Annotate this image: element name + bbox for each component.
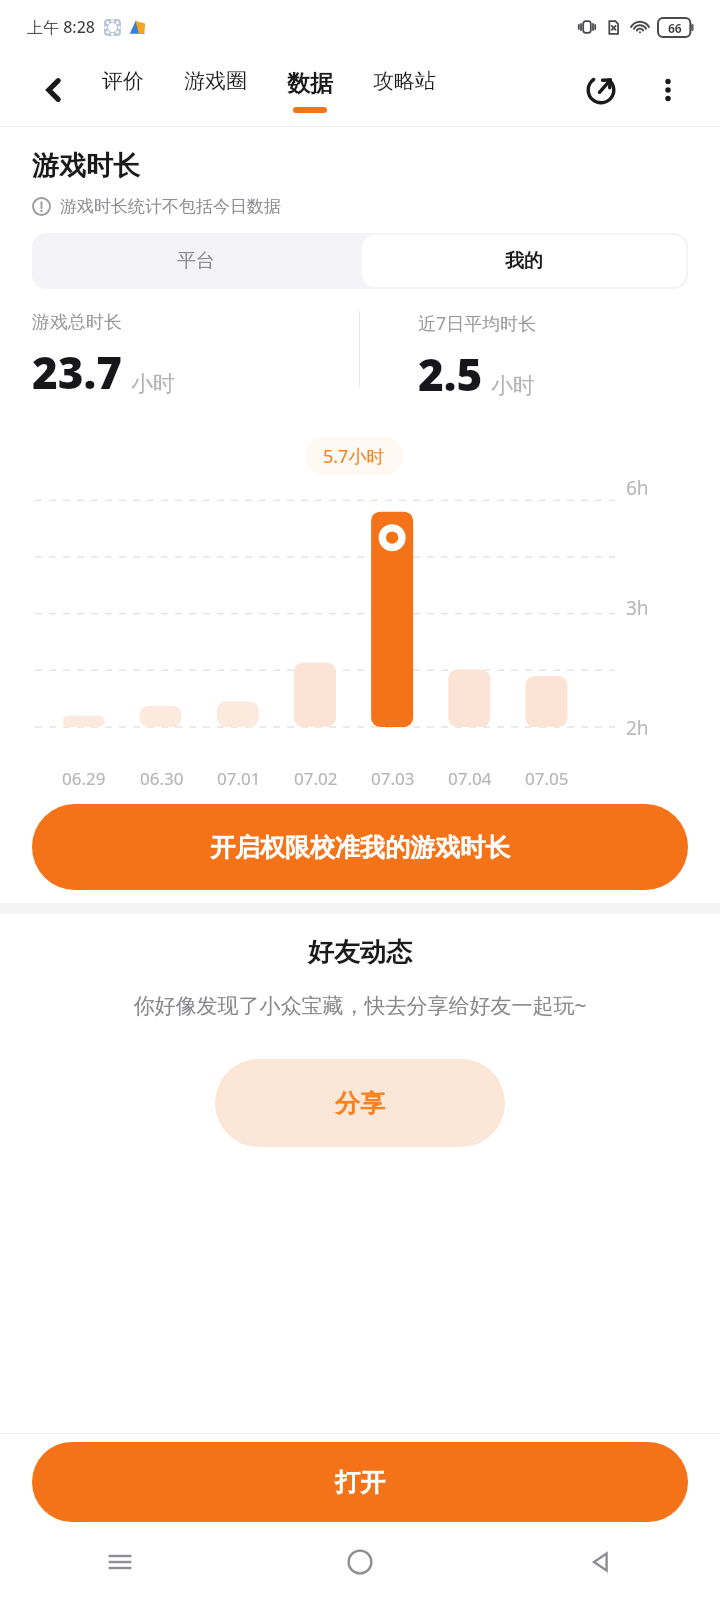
button[interactable]: 数据 xyxy=(285,69,335,113)
button[interactable]: 打开 xyxy=(32,1442,688,1522)
staticText: 游戏总时长 xyxy=(32,311,122,334)
button[interactable]: Back xyxy=(480,1534,720,1590)
button[interactable]: 我的 xyxy=(362,235,686,287)
button[interactable]: 游戏圈 xyxy=(182,68,249,113)
staticText: 07.01 xyxy=(217,767,261,790)
staticText: 5.7小时 xyxy=(323,444,385,469)
staticText: 我的 xyxy=(505,249,543,273)
staticText: 数据 xyxy=(287,69,333,98)
staticText: 打开 xyxy=(335,1467,385,1498)
staticText: 游戏时长统计不包括今日数据 xyxy=(60,196,281,217)
staticText: 小时 xyxy=(491,372,535,400)
staticText: 07.04 xyxy=(448,767,492,790)
button[interactable]: 开启权限校准我的游戏时长 xyxy=(32,804,688,890)
button[interactable]: Back xyxy=(34,70,74,110)
staticText: 好友动态 xyxy=(308,936,412,969)
staticText: 23.7 xyxy=(32,342,123,402)
button[interactable]: Share xyxy=(578,67,624,113)
staticText: 3h xyxy=(626,595,649,621)
staticText: 06.30 xyxy=(140,767,184,790)
staticText: 66 xyxy=(668,20,682,36)
staticText: 07.03 xyxy=(371,767,415,790)
staticText: 游戏圈 xyxy=(184,68,247,94)
button[interactable]: More options xyxy=(646,68,690,112)
staticText: 小时 xyxy=(131,370,175,398)
staticText: 分享 xyxy=(335,1088,385,1119)
staticText: 评价 xyxy=(102,68,144,94)
staticText: 06.29 xyxy=(62,767,106,790)
staticText: 开启权限校准我的游戏时长 xyxy=(210,832,510,863)
button[interactable]: 平台 xyxy=(32,233,360,289)
staticText: 6h xyxy=(626,475,649,501)
staticText: 你好像发现了小众宝藏，快去分享给好友一起玩~ xyxy=(133,991,587,1020)
button[interactable]: 攻略站 xyxy=(371,68,438,113)
staticText: 攻略站 xyxy=(373,68,436,94)
staticText: 2.5 xyxy=(418,344,483,404)
staticText: 07.05 xyxy=(525,767,569,790)
staticText: 平台 xyxy=(177,249,215,273)
staticText: 上午 8:28 xyxy=(27,16,95,38)
staticText: 近7日平均时长 xyxy=(418,311,537,336)
staticText: 游戏时长 xyxy=(32,149,140,183)
staticText: 2h xyxy=(626,715,649,741)
button[interactable]: 分享 xyxy=(215,1059,505,1147)
button[interactable]: Recent apps xyxy=(0,1534,240,1590)
button[interactable]: 评价 xyxy=(100,68,146,113)
button[interactable]: Home xyxy=(240,1534,480,1590)
staticText: 07.02 xyxy=(294,767,338,790)
